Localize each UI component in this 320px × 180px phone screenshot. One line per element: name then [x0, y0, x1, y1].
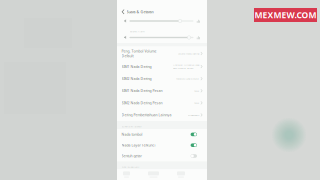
- button[interactable]: SIM2 Nada Dering Pesan: [117, 97, 207, 109]
- staticText: Peng. Tombol Volume Default: [121, 49, 156, 58]
- button[interactable]: SIM2 Nada Dering: [117, 73, 207, 85]
- button[interactable]: SIM1 Nada Dering: [117, 60, 207, 73]
- staticText: Nada Layar Terkunci: [121, 143, 155, 147]
- staticText: OPSI SUARA LAIN: [121, 165, 139, 168]
- staticText: SIM1 Nada Dering: [121, 64, 151, 69]
- staticText: Nada tombol: [121, 132, 142, 137]
- button[interactable]: Peng. Tombol Volume Default: [117, 46, 207, 60]
- staticText: Volume Alarm: [130, 30, 145, 33]
- staticText: Suara & Getaran: [126, 9, 153, 14]
- staticText: Digembala: [188, 113, 199, 117]
- staticText: Antrajati Nirantika Yang baik Official d…: [173, 63, 199, 70]
- button[interactable]: Nada Layar Terkunci: [117, 140, 207, 151]
- staticText: SUARA DAN SISTEM: [121, 125, 141, 128]
- staticText: Tokowara Lang Besarai: [176, 77, 199, 80]
- staticText: Dering Pemberitahuan Lainnya: [121, 113, 171, 117]
- staticText: Tetes: [194, 101, 199, 104]
- button[interactable]: Profil suara senyap: [148, 171, 159, 178]
- button[interactable]: Dering Pemberitahuan Lainnya: [117, 109, 207, 121]
- button[interactable]: Nada tombol: [117, 129, 207, 140]
- button[interactable]: Profil suara standar: [123, 171, 130, 178]
- button[interactable]: Sentuh getar: [117, 151, 207, 161]
- staticText: Tetes: [194, 89, 199, 92]
- staticText: SIM1 Nada Dering Pesan: [121, 88, 162, 93]
- button[interactable]: Profil suara getar: [177, 171, 185, 178]
- staticText: Volume media dering: [178, 52, 199, 55]
- staticText: SIM2 Nada Dering Pesan: [121, 100, 162, 105]
- staticText: SIM2 Nada Dering: [121, 76, 151, 81]
- staticText: MEXMEW.COM: [254, 9, 316, 21]
- button[interactable]: Suara & Getaran: [117, 0, 207, 16]
- staticText: Sentuh getar: [121, 154, 141, 158]
- button[interactable]: SIM1 Nada Dering Pesan: [117, 85, 207, 97]
